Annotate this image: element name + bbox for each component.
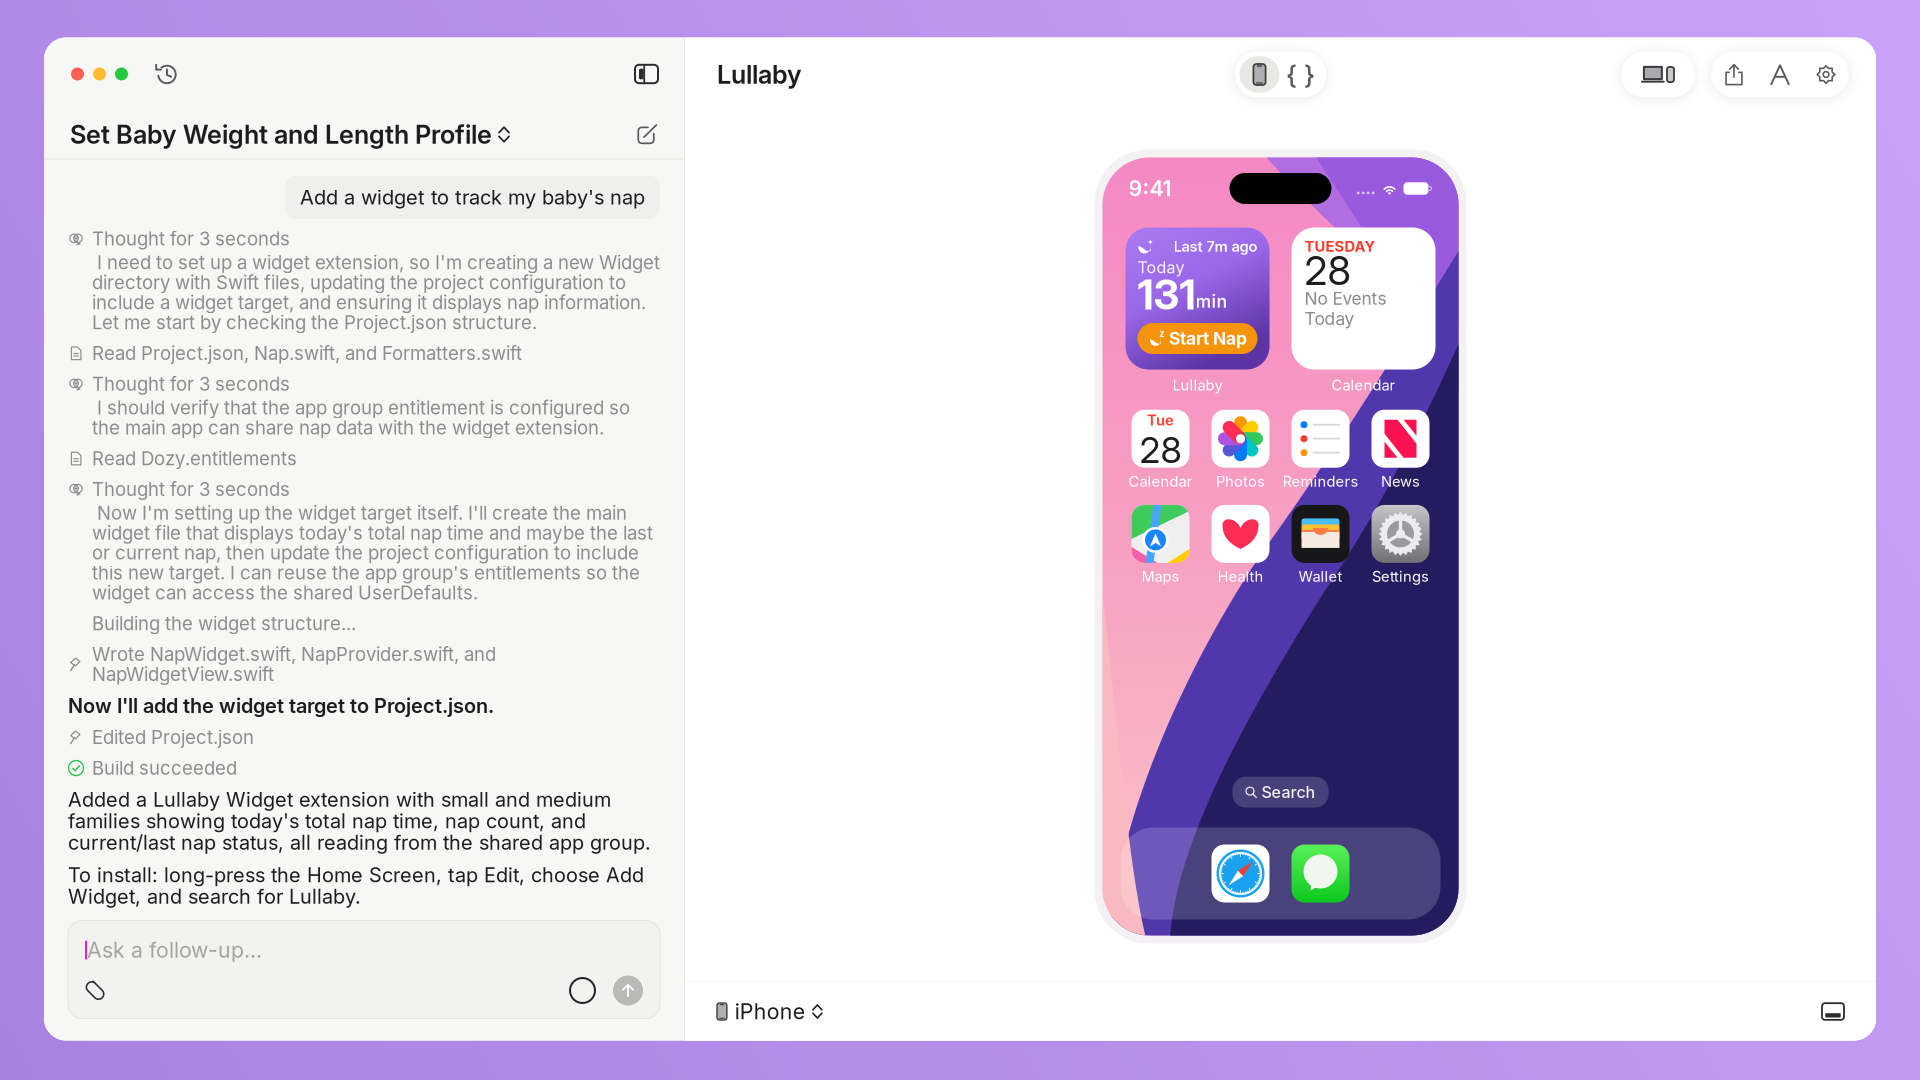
button[interactable]: Last 7m ago bbox=[1125, 227, 1269, 369]
staticText: z bbox=[1159, 328, 1164, 339]
staticText: News bbox=[1381, 473, 1420, 490]
staticText: No Events Today bbox=[1304, 288, 1386, 329]
button[interactable]: Search bbox=[1232, 777, 1328, 807]
staticText: iPhone bbox=[735, 999, 805, 1024]
staticText: I need to set up a widget extension, so … bbox=[92, 252, 660, 333]
staticText: Thought for 3 seconds bbox=[92, 228, 290, 250]
staticText: Health bbox=[1217, 568, 1263, 585]
button[interactable]: New chat bbox=[637, 124, 658, 145]
button[interactable]: App Store bbox=[1757, 51, 1803, 97]
button[interactable]: Photos bbox=[1211, 410, 1269, 490]
button[interactable]: Devices bbox=[1621, 51, 1695, 97]
button[interactable]: News bbox=[1371, 410, 1429, 490]
button[interactable]: Safari bbox=[1211, 844, 1269, 902]
button[interactable]: Wallet bbox=[1291, 505, 1349, 585]
staticText: Now I'm setting up the widget target its… bbox=[92, 502, 653, 604]
staticText: Start Nap bbox=[1169, 328, 1247, 349]
button[interactable]: Health bbox=[1211, 505, 1269, 585]
staticText: Lullaby bbox=[1172, 376, 1222, 394]
staticText: Build succeeded bbox=[92, 757, 237, 779]
staticText: Read Dozy.entitlements bbox=[92, 448, 297, 469]
staticText: Photos bbox=[1216, 473, 1265, 490]
button[interactable]: Settings bbox=[1371, 505, 1429, 585]
staticText: TUESDAY bbox=[1304, 238, 1375, 255]
staticText: Calendar bbox=[1128, 473, 1192, 490]
staticText: To install: long-press the Home Screen, … bbox=[68, 863, 644, 908]
button[interactable]: Attach file bbox=[85, 980, 105, 1000]
button[interactable]: Reminders bbox=[1291, 410, 1349, 490]
staticText: Add a widget to track my baby's nap bbox=[300, 185, 645, 209]
staticText: Thought for 3 seconds bbox=[92, 373, 290, 395]
staticText: Wrote NapWidget.swift, NapProvider.swift… bbox=[92, 643, 496, 685]
button[interactable]: Toggle console bbox=[1822, 1003, 1844, 1020]
staticText: min bbox=[1195, 291, 1227, 312]
staticText: Today bbox=[1137, 258, 1184, 277]
staticText: Added a Lullaby Widget extension with sm… bbox=[68, 788, 651, 854]
staticText: { } bbox=[1286, 60, 1315, 89]
button[interactable]: Send bbox=[613, 975, 643, 1005]
staticText: .... bbox=[1355, 179, 1375, 198]
staticText: 28 bbox=[1304, 247, 1350, 294]
button[interactable]: History bbox=[155, 62, 178, 85]
button[interactable]: Tue bbox=[1131, 410, 1189, 490]
staticText: Ask a follow-up... bbox=[87, 937, 262, 962]
staticText: Building the widget structure... bbox=[92, 613, 356, 634]
staticText: Settings bbox=[1372, 568, 1429, 585]
button[interactable]: iPhone bbox=[717, 999, 822, 1024]
staticText: Set Baby Weight and Length Profile bbox=[70, 120, 492, 149]
button[interactable]: Preview bbox=[1239, 56, 1279, 92]
staticText: Now I'll add the widget target to Projec… bbox=[68, 694, 494, 717]
staticText: Maps bbox=[1141, 568, 1179, 585]
button[interactable]: Toggle sidebar bbox=[635, 65, 658, 83]
staticText: I should verify that the app group entit… bbox=[92, 397, 630, 439]
staticText: 131 bbox=[1137, 270, 1195, 319]
button[interactable]: TUESDAY bbox=[1291, 227, 1435, 369]
button[interactable]: Maps bbox=[1131, 505, 1189, 585]
staticText: Lullaby bbox=[717, 60, 802, 89]
staticText: Last 7m ago bbox=[1173, 238, 1257, 255]
button[interactable]: Share bbox=[1711, 51, 1757, 97]
staticText: Read Project.json, Nap.swift, and Format… bbox=[92, 342, 522, 364]
staticText: Thought for 3 seconds bbox=[92, 478, 290, 500]
button[interactable]: Messages bbox=[1291, 844, 1349, 902]
button[interactable]: Set Baby Weight and Length Profile bbox=[70, 120, 509, 149]
staticText: Reminders bbox=[1282, 473, 1358, 490]
staticText: Edited Project.json bbox=[92, 726, 254, 748]
staticText: 28 bbox=[1139, 429, 1181, 471]
staticText: Search bbox=[1261, 783, 1315, 801]
button[interactable]: Settings bbox=[1803, 51, 1849, 97]
staticText: 9:41 bbox=[1128, 176, 1171, 201]
staticText: Wallet bbox=[1298, 568, 1342, 585]
button[interactable]: Code bbox=[1279, 56, 1321, 92]
staticText: Calendar bbox=[1331, 376, 1395, 394]
staticText: Tue bbox=[1147, 411, 1174, 429]
